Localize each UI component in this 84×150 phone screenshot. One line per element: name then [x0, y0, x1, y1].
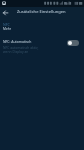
- button[interactable]: NFC automatisch einschalten: [67, 40, 79, 46]
- staticText: Zusätzliche Einstellungen: [17, 9, 66, 15]
- staticText: NFC: Automatisch: [3, 39, 32, 44]
- button[interactable]: Back: [0, 7, 11, 18]
- staticText: Mehr: [3, 27, 11, 31]
- button[interactable]: Mehr: [0, 27, 84, 31]
- staticText: wenn Display an: [3, 49, 29, 53]
- staticText: NFC automatisch aktiv,: [3, 45, 39, 49]
- staticText: NFC: [3, 22, 10, 27]
- button[interactable]: NFC: Automatisch: [0, 39, 84, 53]
